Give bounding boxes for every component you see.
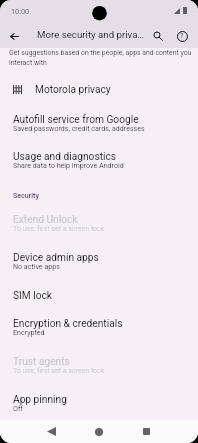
staticText: Device admin apps bbox=[13, 252, 99, 264]
staticText: Encrypted bbox=[13, 328, 45, 336]
button[interactable]: Help bbox=[171, 25, 193, 47]
button[interactable]: Device admin apps bbox=[0, 252, 198, 290]
staticText: Usage and diagnostics bbox=[13, 151, 117, 163]
button[interactable]: Recents bbox=[135, 420, 157, 443]
staticText: 10:00 bbox=[11, 7, 30, 16]
staticText: Off bbox=[13, 404, 23, 412]
staticText: No active apps bbox=[13, 262, 60, 270]
button[interactable]: SIM lock bbox=[0, 290, 198, 319]
button[interactable]: Trust agents bbox=[0, 356, 198, 394]
staticText: SIM lock bbox=[13, 290, 53, 302]
button[interactable]: Search bbox=[147, 25, 169, 47]
button[interactable]: Back bbox=[2, 24, 26, 48]
staticText: ? bbox=[180, 32, 184, 40]
button[interactable]: Home bbox=[88, 420, 110, 443]
staticText: Trust agents bbox=[13, 356, 70, 368]
staticText: To use, first set a screen lock bbox=[13, 366, 105, 374]
button[interactable]: Motorola privacy bbox=[0, 78, 198, 101]
staticText: Get suggestions based on the people, app… bbox=[9, 49, 193, 67]
button[interactable]: Autofill service from Google bbox=[0, 114, 198, 152]
staticText: To use, first set a screen lock bbox=[13, 224, 105, 232]
button[interactable]: Usage and diagnostics bbox=[0, 151, 198, 189]
staticText: Encryption & credentials bbox=[13, 318, 123, 330]
button[interactable]: App pinning bbox=[0, 394, 198, 432]
staticText: Extend Unlock bbox=[13, 214, 78, 226]
staticText: Security bbox=[13, 191, 39, 199]
button[interactable]: Extend Unlock bbox=[0, 214, 198, 252]
staticText: Autofill service from Google bbox=[13, 114, 139, 126]
staticText: Motorola privacy bbox=[35, 84, 111, 96]
staticText: App pinning bbox=[13, 394, 67, 406]
staticText: More security and priva… bbox=[37, 29, 144, 40]
button[interactable]: Back bbox=[40, 420, 62, 443]
button[interactable]: Encryption & credentials bbox=[0, 318, 198, 356]
staticText: Saved passwords, credit cards, addresses bbox=[13, 124, 145, 132]
staticText: Share data to help improve Android bbox=[13, 161, 124, 169]
